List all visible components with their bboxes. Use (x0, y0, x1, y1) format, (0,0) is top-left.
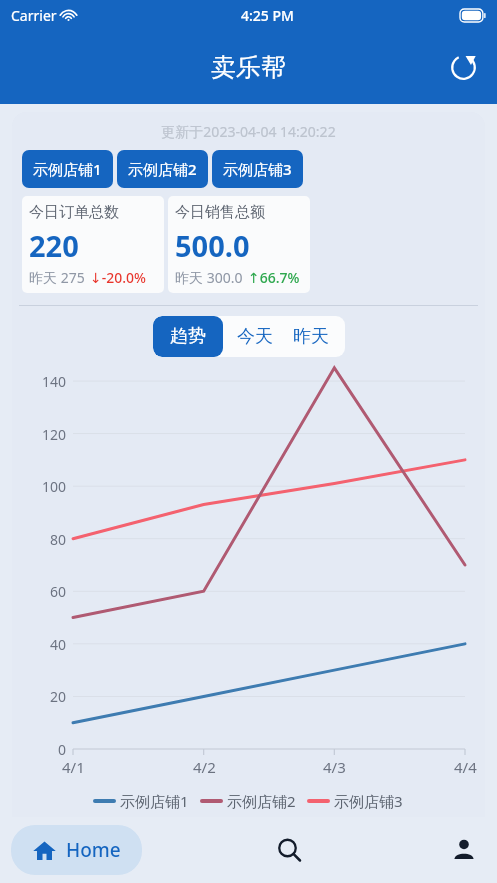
button[interactable]: Refresh (443, 47, 483, 87)
staticText: 140 (42, 372, 67, 391)
staticText: 4/4 (454, 757, 477, 777)
staticText: 4:25 PM (241, 6, 294, 25)
staticText: 示例店铺3 (223, 159, 292, 179)
staticText: 示例店铺3 (334, 791, 403, 811)
staticText: 20 (50, 687, 67, 706)
staticText: 100 (42, 477, 67, 496)
staticText: ↓-20.0% (90, 268, 146, 287)
staticText: 示例店铺2 (227, 791, 296, 811)
button[interactable]: Search (259, 820, 319, 880)
button[interactable]: 趋势 (153, 316, 223, 357)
button[interactable]: Home (11, 825, 142, 875)
staticText: 120 (42, 425, 67, 444)
staticText: 今日销售总额 (175, 203, 265, 222)
staticText: 4/2 (193, 757, 216, 777)
staticText: 今日订单总数 (29, 203, 119, 222)
staticText: 80 (50, 530, 67, 549)
staticText: 220 (29, 226, 79, 265)
button[interactable]: 今日销售总额 (168, 196, 310, 293)
staticText: 今天 (237, 325, 273, 348)
staticText: 示例店铺2 (128, 159, 197, 179)
staticText: Carrier (11, 6, 57, 25)
button[interactable]: 昨天 (287, 316, 345, 357)
button[interactable]: 示例店铺2 (117, 150, 208, 188)
button[interactable]: 今天 (223, 316, 287, 357)
staticText: 昨天 275 (29, 268, 85, 287)
button[interactable]: 示例店铺1 (95, 791, 189, 811)
staticText: 60 (50, 582, 67, 601)
button[interactable]: 示例店铺3 (309, 791, 403, 811)
staticText: ↑66.7% (248, 268, 300, 287)
staticText: 4/3 (323, 757, 346, 777)
staticText: 40 (50, 635, 67, 654)
button[interactable]: Profile (437, 820, 491, 880)
staticText: 卖乐帮 (211, 52, 286, 83)
staticText: 昨天 (293, 325, 329, 348)
staticText: 趋势 (170, 325, 206, 348)
button[interactable]: 今日订单总数 (22, 196, 164, 293)
staticText: 示例店铺1 (33, 159, 102, 179)
staticText: 昨天 300.0 (175, 268, 243, 287)
staticText: Home (66, 837, 121, 863)
button[interactable]: 示例店铺3 (212, 150, 303, 188)
staticText: 500.0 (175, 226, 250, 265)
button[interactable]: 示例店铺1 (22, 150, 113, 188)
staticText: 4/1 (62, 757, 85, 777)
button[interactable]: 示例店铺2 (202, 791, 296, 811)
staticText: 0 (58, 740, 67, 759)
staticText: 更新于2023-04-04 14:20:22 (12, 122, 485, 141)
staticText: 示例店铺1 (120, 791, 189, 811)
